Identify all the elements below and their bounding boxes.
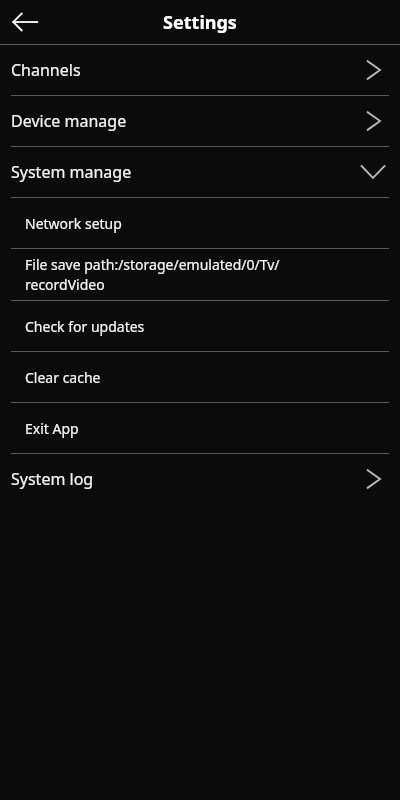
staticText: Network setup bbox=[25, 214, 122, 233]
button[interactable]: Device manage bbox=[0, 96, 400, 146]
staticText: Channels bbox=[11, 59, 364, 81]
button[interactable]: System manage bbox=[0, 147, 400, 197]
button[interactable]: System log bbox=[0, 454, 400, 504]
staticText: Clear cache bbox=[25, 368, 101, 387]
button[interactable]: Network setup bbox=[0, 198, 400, 248]
button[interactable]: Back bbox=[12, 9, 38, 35]
button[interactable]: Clear cache bbox=[0, 352, 400, 402]
button[interactable]: Check for updates bbox=[0, 301, 400, 351]
staticText: Check for updates bbox=[25, 317, 145, 336]
staticText: Settings bbox=[0, 10, 400, 35]
staticText: System log bbox=[11, 468, 364, 490]
button[interactable]: Exit App bbox=[0, 403, 400, 453]
staticText: Exit App bbox=[25, 419, 79, 438]
staticText: System manage bbox=[11, 161, 360, 183]
staticText: Device manage bbox=[11, 110, 364, 132]
button[interactable]: File save path:/storage/emulated/0/Tv/ r… bbox=[0, 249, 400, 300]
staticText: File save path:/storage/emulated/0/Tv/ r… bbox=[25, 255, 280, 294]
button[interactable]: Channels bbox=[0, 45, 400, 95]
